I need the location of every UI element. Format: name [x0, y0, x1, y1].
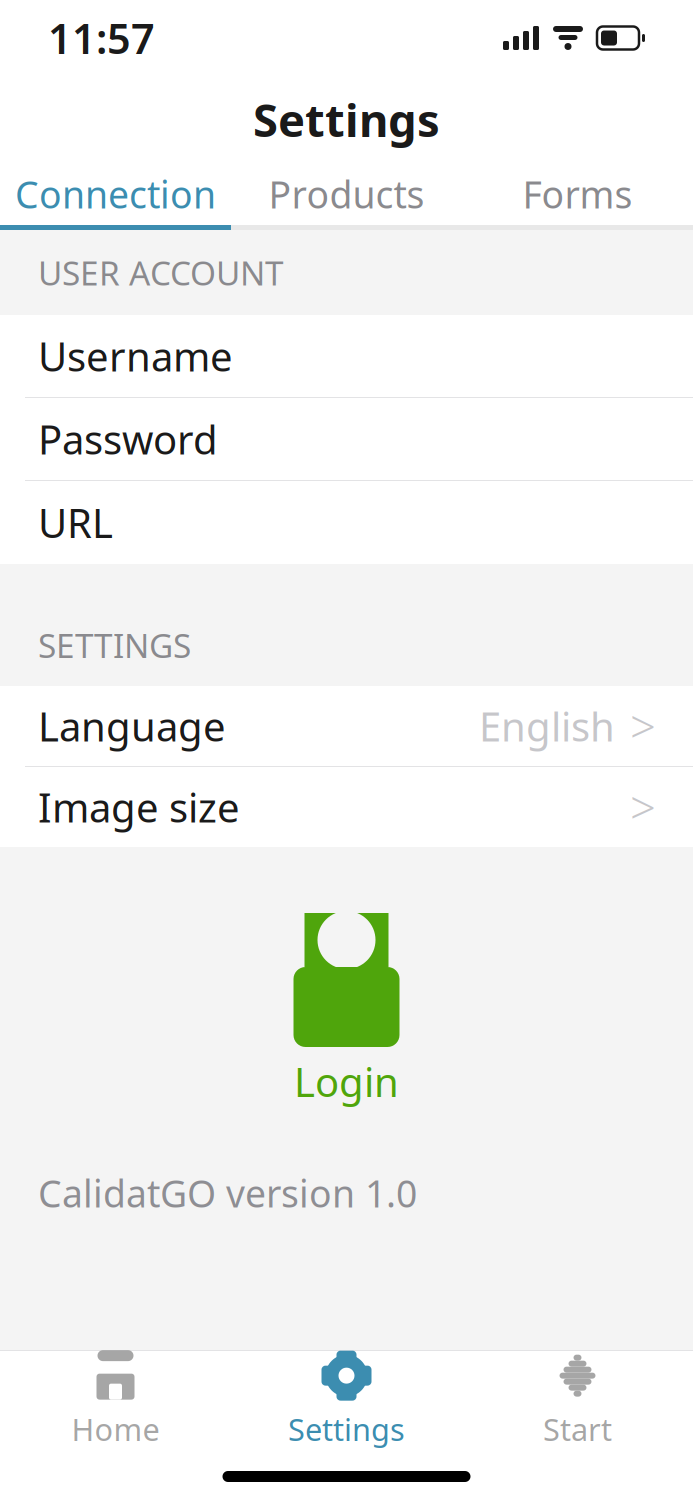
staticText: Username [38, 329, 233, 382]
button[interactable]: Username [0, 315, 693, 398]
button[interactable]: Password [0, 398, 693, 481]
staticText: Password [38, 412, 218, 465]
staticText: > [630, 696, 656, 756]
staticText: Forms [522, 169, 632, 219]
button[interactable]: Image size [0, 767, 693, 847]
button[interactable]: Connection [0, 163, 231, 225]
staticText: URL [38, 496, 113, 549]
staticText: English [479, 699, 615, 752]
staticText: 11:57 [48, 11, 155, 65]
button[interactable]: Forms [462, 163, 693, 225]
button[interactable]: Products [231, 163, 462, 225]
button[interactable]: Home [0, 1352, 231, 1448]
button[interactable]: Login [291, 913, 401, 1108]
staticText: Connection [15, 169, 216, 219]
button[interactable]: Start [462, 1352, 693, 1448]
staticText: Image size [38, 780, 240, 833]
staticText: Settings [253, 89, 440, 150]
staticText: Home [71, 1409, 159, 1449]
staticText: Settings [288, 1409, 405, 1449]
button[interactable]: URL [0, 481, 693, 564]
staticText: Login [294, 1055, 399, 1108]
staticText: Products [268, 169, 424, 219]
staticText: SETTINGS [38, 623, 191, 667]
staticText: CalidatGO version 1.0 [38, 1168, 417, 1218]
button[interactable]: Settings [231, 1352, 462, 1448]
staticText: > [630, 777, 656, 837]
staticText: Start [543, 1409, 612, 1449]
button[interactable]: Language [0, 686, 693, 767]
staticText: Language [38, 699, 226, 752]
staticText: USER ACCOUNT [38, 250, 284, 295]
